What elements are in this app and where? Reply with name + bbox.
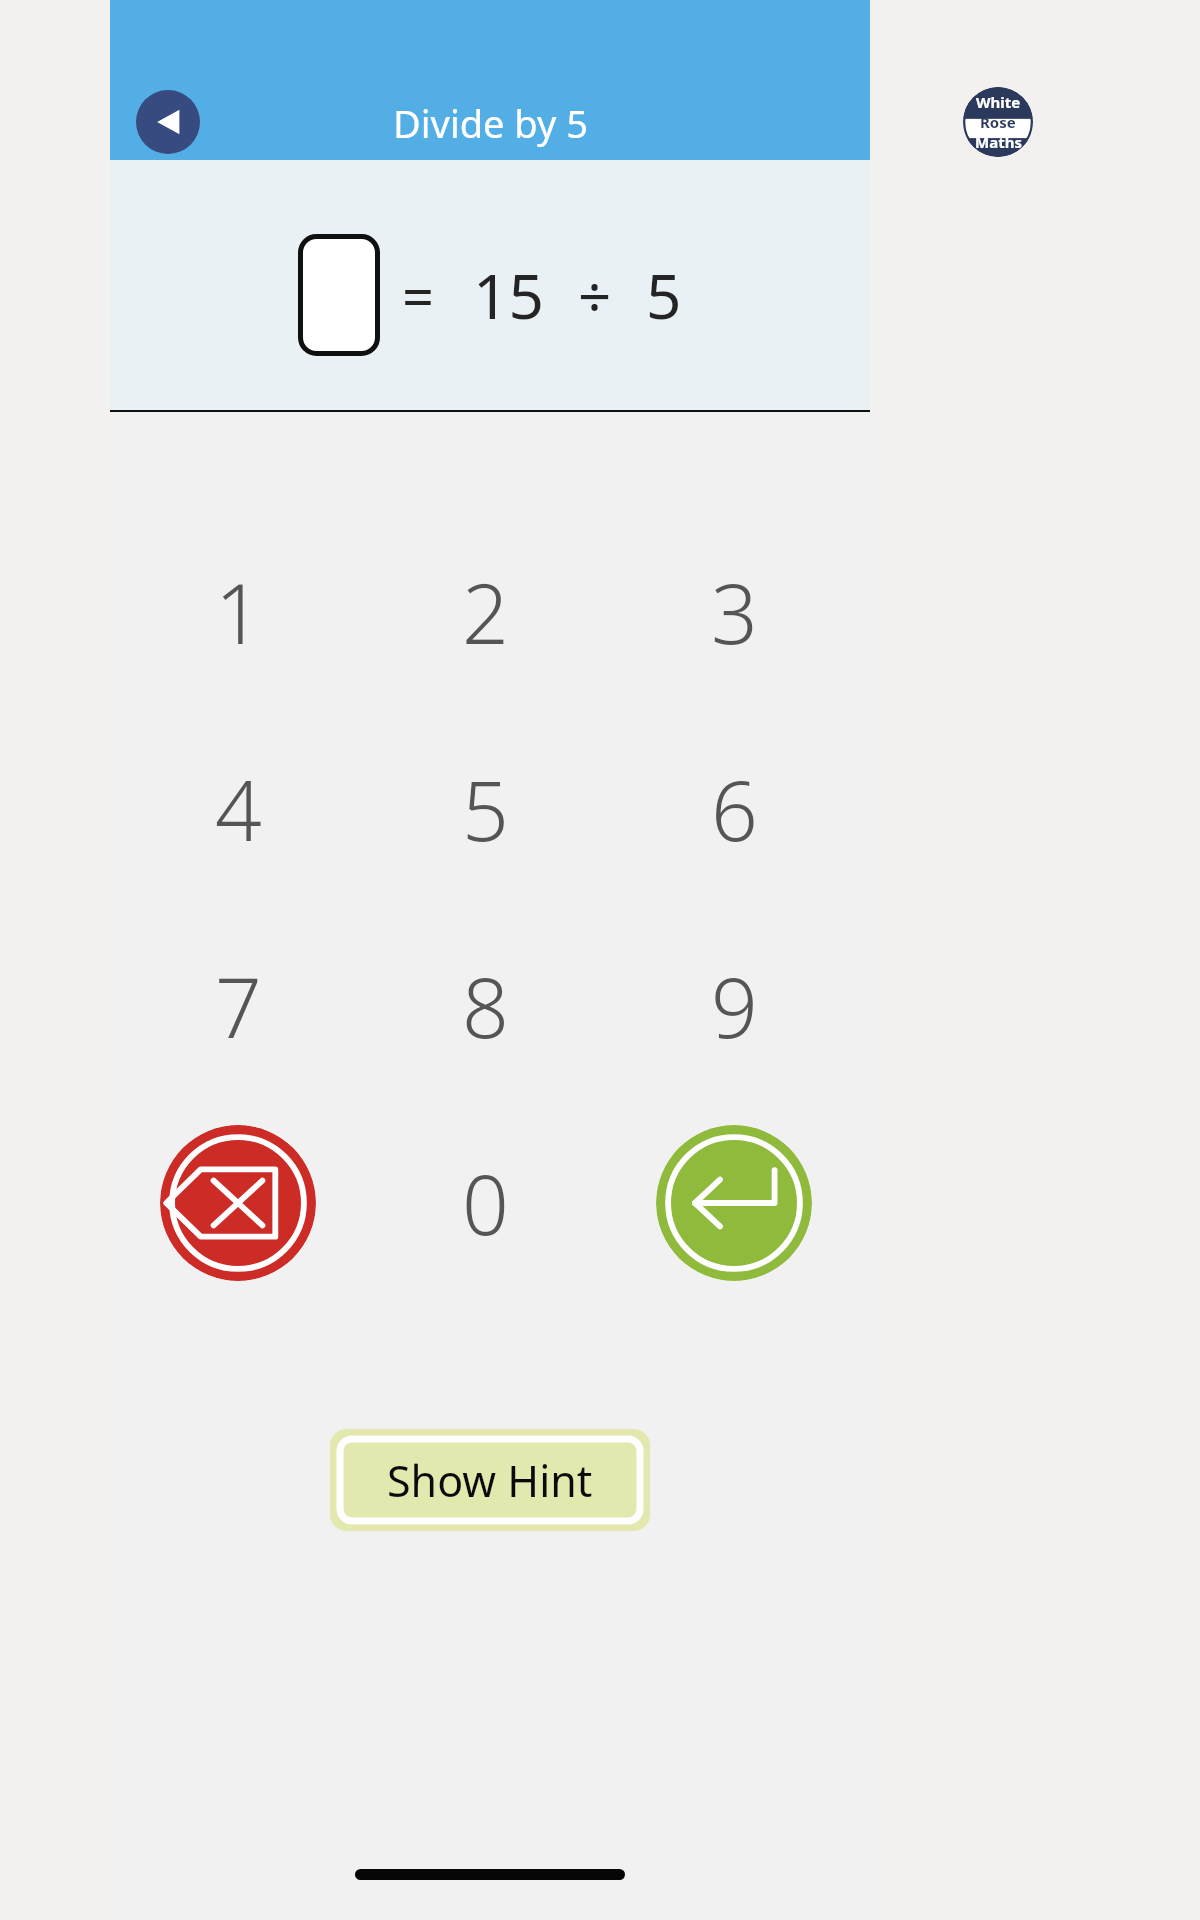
staticText: Show Hint <box>387 1451 593 1510</box>
button[interactable]: 2 <box>405 542 565 682</box>
staticText: Maths <box>975 132 1022 152</box>
staticText: 9 <box>711 950 758 1062</box>
button[interactable]: 5 <box>405 739 565 879</box>
button[interactable]: 9 <box>654 936 814 1076</box>
staticText: 5 <box>462 753 509 865</box>
button[interactable]: 6 <box>654 739 814 879</box>
staticText: 3 <box>711 556 758 668</box>
button[interactable]: 1 <box>158 542 318 682</box>
staticText: 1 <box>215 556 262 668</box>
staticText: 0 <box>462 1147 509 1259</box>
staticText: 4 <box>215 753 262 865</box>
staticText: Rose <box>980 112 1016 132</box>
button[interactable]: White Rose Maths <box>963 87 1033 157</box>
button[interactable]: Show Hint <box>330 1429 650 1531</box>
staticText: 7 <box>215 950 262 1062</box>
button[interactable]: Delete <box>160 1125 316 1281</box>
staticText: Divide by 5 <box>393 97 588 149</box>
button[interactable]: Answer box <box>298 234 380 356</box>
button[interactable]: Enter <box>656 1125 812 1281</box>
button[interactable]: 3 <box>654 542 814 682</box>
button[interactable]: 7 <box>158 936 318 1076</box>
staticText: 5 <box>646 253 682 337</box>
staticText: ÷ <box>578 256 612 335</box>
staticText: 6 <box>711 753 758 865</box>
staticText: 8 <box>462 950 509 1062</box>
button[interactable]: 8 <box>405 936 565 1076</box>
button[interactable]: Back <box>136 90 200 154</box>
button[interactable]: 4 <box>158 739 318 879</box>
staticText: = <box>402 257 435 333</box>
staticText: 15 <box>473 253 544 337</box>
staticText: White <box>976 92 1021 112</box>
staticText: 2 <box>462 556 509 668</box>
button[interactable]: 0 <box>405 1133 565 1273</box>
